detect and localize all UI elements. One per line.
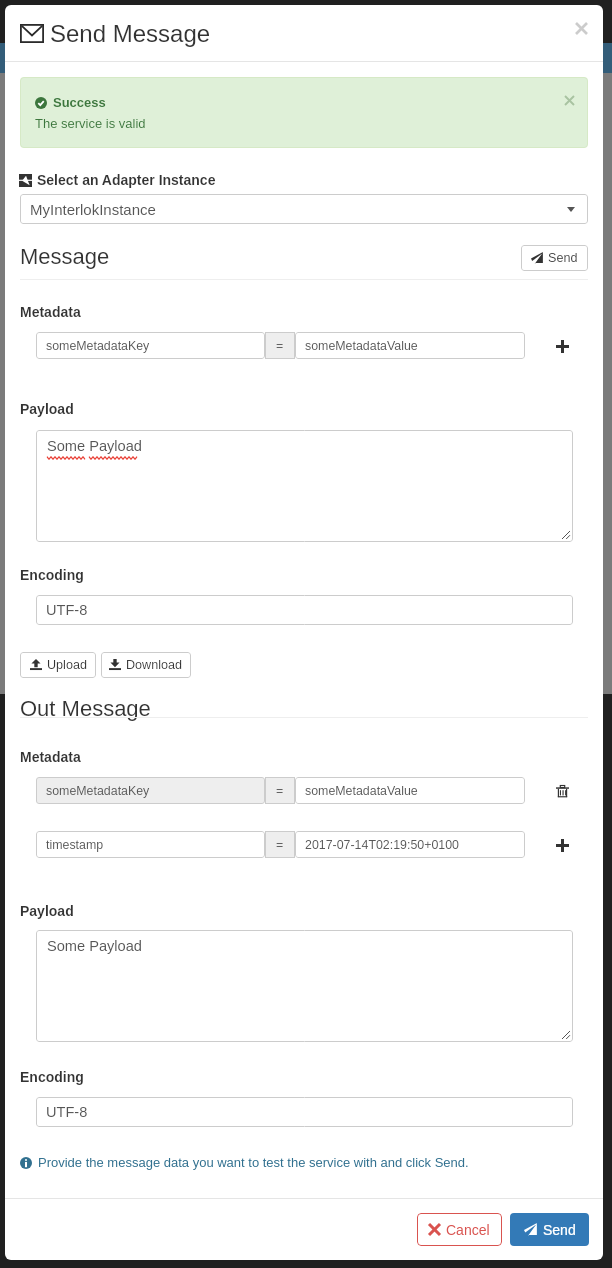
staticText: Metadata bbox=[20, 749, 81, 765]
button[interactable]: someMetadataKey bbox=[36, 332, 265, 359]
staticText: = bbox=[276, 838, 284, 852]
button[interactable]: Add metadata bbox=[549, 333, 575, 359]
staticText: Send bbox=[543, 1222, 576, 1238]
button[interactable]: UTF-8 bbox=[36, 1097, 573, 1127]
staticText: Select an Adapter Instance bbox=[37, 172, 216, 188]
staticText: Provide the message data you want to tes… bbox=[38, 1155, 469, 1170]
button[interactable]: 2017-07-14T02:19:50+0100 bbox=[295, 831, 525, 858]
staticText: = bbox=[276, 339, 284, 353]
button[interactable]: Download bbox=[101, 652, 191, 678]
staticText: someMetadataKey bbox=[46, 784, 150, 798]
staticText: Download bbox=[126, 658, 183, 672]
button[interactable]: Send bbox=[510, 1213, 589, 1246]
button[interactable]: Close bbox=[565, 12, 597, 44]
button[interactable]: someMetadataValue bbox=[295, 777, 525, 804]
button[interactable]: Cancel bbox=[417, 1213, 502, 1246]
staticText: Upload bbox=[47, 658, 87, 672]
staticText: The service is valid bbox=[35, 116, 146, 131]
button[interactable]: someMetadataKey bbox=[36, 777, 265, 804]
staticText: Send bbox=[548, 251, 578, 265]
staticText: Cancel bbox=[446, 1222, 490, 1238]
button[interactable]: someMetadataValue bbox=[295, 332, 525, 359]
staticText: someMetadataValue bbox=[305, 339, 418, 353]
staticText: timestamp bbox=[46, 838, 104, 852]
button[interactable]: Add metadata bbox=[549, 832, 575, 858]
button[interactable]: Send bbox=[521, 245, 588, 271]
staticText: MyInterlokInstance bbox=[30, 201, 156, 218]
button[interactable]: UTF-8 bbox=[36, 595, 573, 625]
staticText: Payload bbox=[20, 903, 74, 919]
button[interactable]: Upload bbox=[20, 652, 96, 678]
staticText: Success bbox=[53, 95, 106, 110]
button[interactable]: Some Payload bbox=[36, 930, 573, 1042]
button[interactable]: timestamp bbox=[36, 831, 265, 858]
staticText: Some Payload bbox=[47, 938, 142, 954]
staticText: Message bbox=[20, 244, 110, 269]
staticText: 2017-07-14T02:19:50+0100 bbox=[305, 838, 459, 852]
staticText: Out Message bbox=[20, 696, 151, 721]
staticText: Encoding bbox=[20, 1069, 84, 1085]
staticText: Encoding bbox=[20, 567, 84, 583]
staticText: Payload bbox=[20, 401, 74, 417]
staticText: someMetadataValue bbox=[305, 784, 418, 798]
staticText: Send Message bbox=[50, 20, 211, 47]
staticText: someMetadataKey bbox=[46, 339, 150, 353]
button[interactable]: Some Payload bbox=[36, 430, 573, 542]
button[interactable]: Dismiss alert bbox=[558, 89, 580, 111]
staticText: = bbox=[276, 784, 284, 798]
staticText: Metadata bbox=[20, 304, 81, 320]
staticText: UTF-8 bbox=[46, 602, 88, 618]
staticText: Some Payload bbox=[47, 438, 142, 454]
button[interactable]: MyInterlokInstance bbox=[20, 194, 588, 224]
staticText: UTF-8 bbox=[46, 1104, 88, 1120]
button[interactable]: Delete metadata bbox=[549, 778, 575, 804]
